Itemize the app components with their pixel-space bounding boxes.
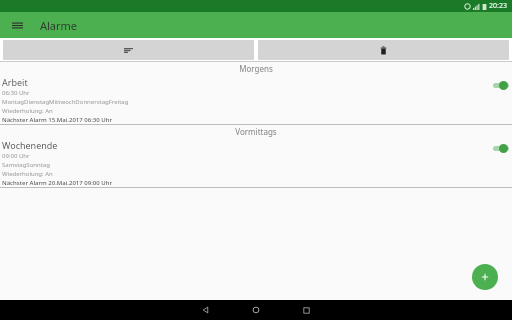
staticText: Wochenende xyxy=(2,139,58,151)
button[interactable]: Löschen xyxy=(258,40,509,60)
staticText: 09:00 Uhr xyxy=(2,152,30,160)
button[interactable]: Navigationsmenü öffnen xyxy=(8,16,26,34)
button[interactable]: Sortieren xyxy=(3,40,254,60)
button[interactable]: Wochenende xyxy=(0,138,512,188)
staticText: SamstagSonntag xyxy=(2,161,50,169)
button[interactable]: Letzte Apps xyxy=(292,300,320,320)
staticText: Alarme xyxy=(40,18,78,33)
staticText: Vormittags xyxy=(235,126,277,137)
button[interactable]: Zurück xyxy=(192,300,220,320)
button[interactable]: Alarm aktivieren xyxy=(492,142,512,154)
staticText: MontagDienstagMittwochDonnerstagFreitag xyxy=(2,98,129,106)
button[interactable]: Startbildschirm xyxy=(242,300,270,320)
staticText: 06:30 Uhr xyxy=(2,89,30,97)
button[interactable]: Alarm hinzufügen xyxy=(472,264,498,290)
staticText: Nächster Alarm 20.Mai.2017 09:00 Uhr xyxy=(2,179,112,187)
staticText: Wiederholung: An xyxy=(2,107,53,115)
staticText: Wiederholung: An xyxy=(2,170,53,178)
staticText: 20:23 xyxy=(489,1,507,11)
staticText: Arbeit xyxy=(2,76,28,88)
button[interactable]: Arbeit xyxy=(0,75,512,125)
staticText: Nächster Alarm 15.Mai.2017 06:30 Uhr xyxy=(2,116,112,124)
button[interactable]: Alarm aktivieren xyxy=(492,79,512,91)
staticText: Morgens xyxy=(239,63,273,74)
